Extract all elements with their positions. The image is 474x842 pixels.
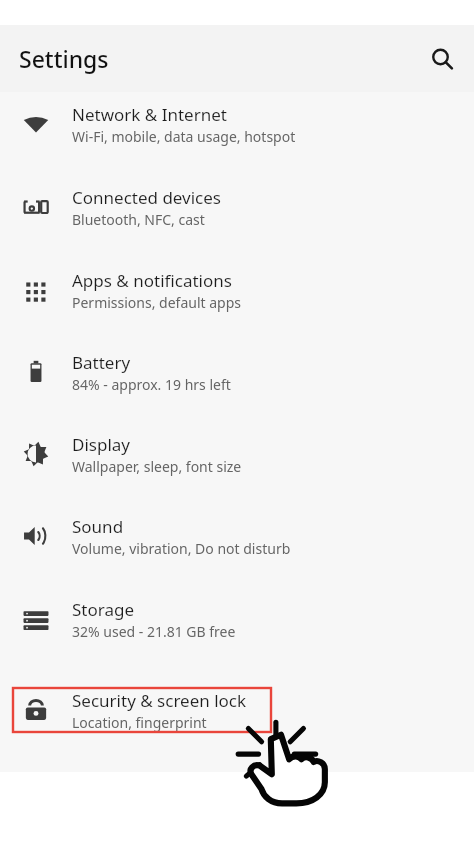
staticText: Sound [72,515,124,538]
button[interactable]: Apps & notifications [0,268,474,312]
button[interactable]: Storage [0,597,474,641]
button[interactable]: Search [418,35,466,83]
staticText: Wi-Fi, mobile, data usage, hotspot [72,127,296,146]
button[interactable]: Security & screen lock [0,688,474,732]
staticText: Settings [19,43,109,74]
staticText: Connected devices [72,186,222,209]
staticText: Volume, vibration, Do not disturb [72,539,291,558]
staticText: Bluetooth, NFC, cast [72,210,205,229]
staticText: Apps & notifications [72,269,232,292]
staticText: Network & Internet [72,103,227,126]
staticText: 32% used - 21.81 GB free [72,622,236,641]
button[interactable]: Sound [0,514,474,558]
staticText: Storage [72,598,135,621]
button[interactable]: Display [0,432,474,476]
staticText: Battery [72,351,131,374]
button[interactable]: Connected devices [0,185,474,229]
staticText: Display [72,433,130,456]
button[interactable]: Battery [0,350,474,394]
staticText: 84% - approx. 19 hrs left [72,375,231,394]
staticText: Security & screen lock [72,689,247,712]
staticText: Permissions, default apps [72,293,242,312]
staticText: Location, fingerprint [72,713,207,732]
staticText: Wallpaper, sleep, font size [72,457,242,476]
button[interactable]: Network & Internet [0,102,474,146]
